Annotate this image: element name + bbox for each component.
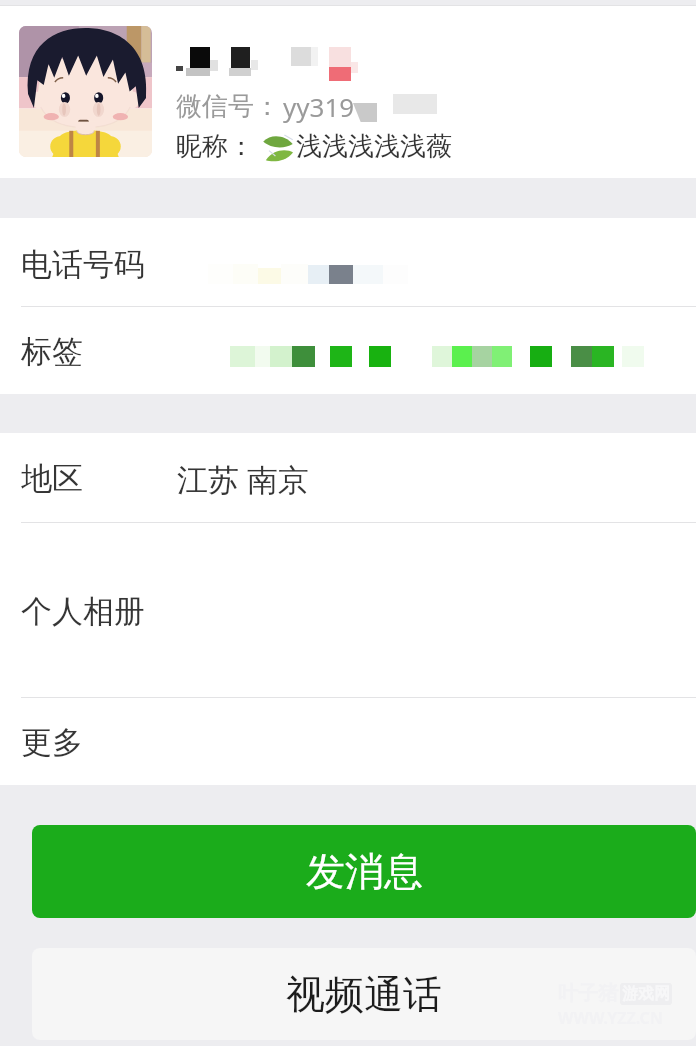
staticText: 江苏 南京 bbox=[177, 458, 310, 500]
staticText: 游戏网 bbox=[622, 984, 670, 1004]
button[interactable]: 标签 bbox=[0, 307, 696, 394]
button[interactable]: Profile photo bbox=[19, 26, 152, 157]
button[interactable]: Profile photo bbox=[0, 6, 696, 178]
button[interactable]: 发消息 bbox=[32, 825, 696, 918]
staticText: 视频通话 bbox=[286, 970, 442, 1019]
staticText: 地区 bbox=[21, 459, 83, 498]
button[interactable]: 视频通话 bbox=[32, 948, 696, 1040]
staticText: 更多 bbox=[21, 723, 83, 762]
staticText: 个人相册 bbox=[21, 592, 145, 631]
staticText: 浅浅浅浅浅薇 bbox=[296, 130, 452, 163]
button[interactable]: 个人相册 bbox=[0, 523, 696, 697]
staticText: 昵称： bbox=[176, 130, 254, 163]
staticText: yy319 bbox=[283, 89, 355, 124]
button[interactable]: 地区 bbox=[0, 433, 696, 522]
button[interactable]: 电话号码 bbox=[0, 218, 696, 306]
button[interactable]: 更多 bbox=[0, 698, 696, 785]
staticText: 发消息 bbox=[306, 847, 423, 896]
staticText: 标签 bbox=[21, 332, 83, 371]
staticText: 电话号码 bbox=[21, 245, 145, 284]
staticText: 微信号： bbox=[176, 90, 280, 123]
